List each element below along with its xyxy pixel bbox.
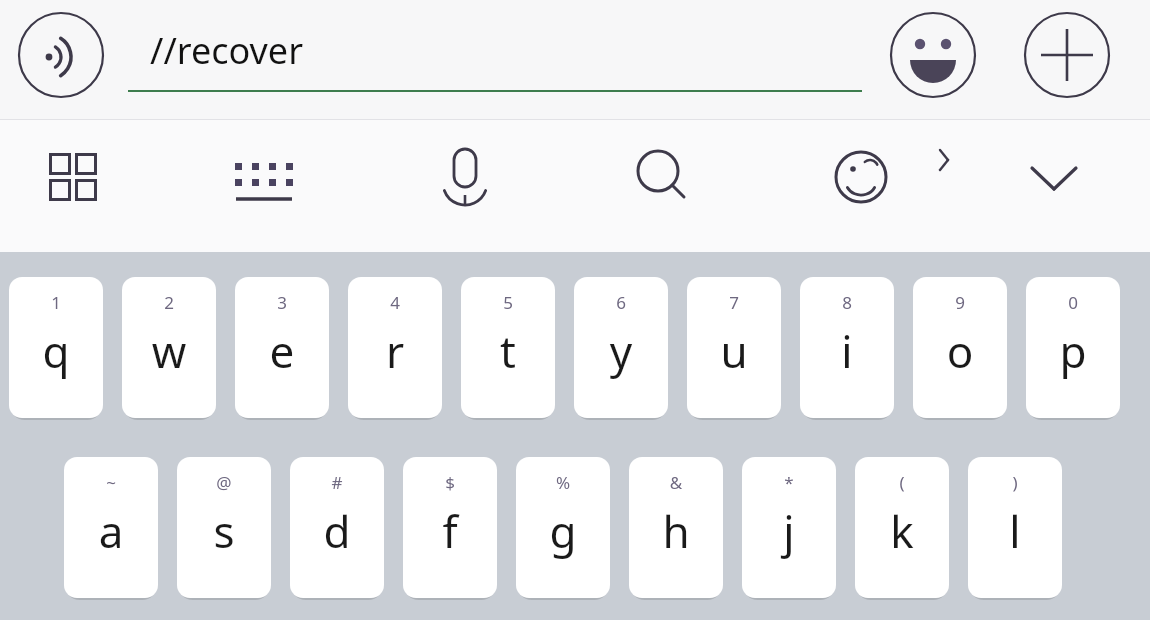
staticText: 1 — [9, 291, 103, 314]
button[interactable]: 4 — [348, 277, 442, 418]
button[interactable]: 8 — [800, 277, 894, 418]
button[interactable]: 6 — [574, 277, 668, 418]
staticText: i — [800, 321, 894, 381]
button[interactable]: @ — [177, 457, 271, 598]
staticText: p — [1026, 321, 1120, 381]
button[interactable]: Hide keyboard — [1013, 136, 1095, 218]
button[interactable]: Emoji — [888, 10, 978, 100]
button[interactable]: Add — [1022, 10, 1112, 100]
button[interactable]: * — [742, 457, 836, 598]
staticText: y — [574, 321, 668, 381]
staticText: s — [177, 501, 271, 561]
button[interactable]: 0 — [1026, 277, 1120, 418]
staticText: e — [235, 321, 329, 381]
button[interactable]: //recover — [128, 18, 862, 98]
staticText: f — [403, 501, 497, 561]
button[interactable]: % — [516, 457, 610, 598]
staticText: o — [913, 321, 1007, 381]
staticText: h — [629, 501, 723, 561]
staticText: j — [742, 501, 836, 561]
staticText: % — [516, 471, 610, 494]
staticText: l — [968, 501, 1062, 561]
staticText: ( — [855, 471, 949, 494]
staticText: a — [64, 501, 158, 561]
button[interactable]: $ — [403, 457, 497, 598]
staticText: r — [348, 321, 442, 381]
button[interactable]: Sound — [16, 10, 106, 100]
staticText: 4 — [348, 291, 442, 314]
button[interactable]: Apps — [32, 136, 114, 218]
staticText: q — [9, 321, 103, 381]
button[interactable]: ) — [968, 457, 1062, 598]
button[interactable]: 3 — [235, 277, 329, 418]
staticText: 3 — [235, 291, 329, 314]
button[interactable]: 7 — [687, 277, 781, 418]
button[interactable]: & — [629, 457, 723, 598]
staticText: & — [629, 471, 723, 494]
button[interactable]: # — [290, 457, 384, 598]
button[interactable]: 5 — [461, 277, 555, 418]
staticText: u — [687, 321, 781, 381]
staticText: g — [516, 501, 610, 561]
staticText: d — [290, 501, 384, 561]
staticText: ) — [968, 471, 1062, 494]
staticText: 6 — [574, 291, 668, 314]
button[interactable]: 2 — [122, 277, 216, 418]
button[interactable]: Voice input — [424, 136, 506, 218]
button[interactable]: ~ — [64, 457, 158, 598]
staticText: ~ — [64, 471, 158, 494]
staticText: 9 — [913, 291, 1007, 314]
staticText: t — [461, 321, 555, 381]
button[interactable]: More — [920, 136, 968, 184]
button[interactable]: ( — [855, 457, 949, 598]
button[interactable]: 1 — [9, 277, 103, 418]
staticText: //recover — [150, 26, 304, 75]
staticText: # — [290, 471, 384, 494]
staticText: 8 — [800, 291, 894, 314]
staticText: * — [742, 471, 836, 494]
staticText: $ — [403, 471, 497, 494]
staticText: 7 — [687, 291, 781, 314]
button[interactable]: 9 — [913, 277, 1007, 418]
staticText: k — [855, 501, 949, 561]
staticText: 2 — [122, 291, 216, 314]
button[interactable]: Search — [622, 136, 704, 218]
staticText: @ — [177, 471, 271, 494]
staticText: w — [122, 321, 216, 381]
button[interactable]: Keyboard — [223, 136, 305, 218]
button[interactable]: Stickers — [820, 136, 902, 218]
staticText: 5 — [461, 291, 555, 314]
staticText: 0 — [1026, 291, 1120, 314]
